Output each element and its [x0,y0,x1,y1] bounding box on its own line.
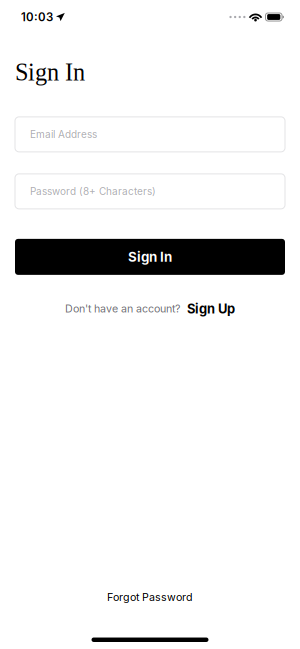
staticText: Don't have an account? [65,302,180,315]
button[interactable]: Email Address [15,117,285,152]
staticText: Email Address [30,128,97,140]
staticText: Sign In [128,249,172,265]
staticText: 10:03 [21,10,53,24]
staticText: Sign In [15,59,85,86]
button[interactable]: Forgot Password [97,587,203,607]
button[interactable]: Password (8+ Characters) [15,174,285,209]
staticText: Password (8+ Characters) [30,185,156,197]
staticText: Sign Up [187,301,235,316]
staticText: Forgot Password [107,591,193,603]
button[interactable]: Sign Up [187,301,235,316]
button[interactable]: Sign In [15,239,285,275]
